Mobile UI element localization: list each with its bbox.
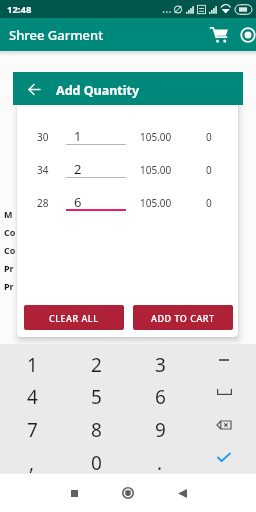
button[interactable]: dash bbox=[192, 344, 256, 376]
button[interactable]: 2 bbox=[64, 344, 128, 376]
button[interactable]: 8 bbox=[64, 408, 128, 441]
staticText: M bbox=[4, 208, 13, 220]
button[interactable]: space bbox=[192, 376, 256, 408]
staticText: 4 bbox=[27, 384, 38, 410]
staticText: 6 bbox=[74, 193, 82, 211]
button[interactable]: Cart bbox=[208, 24, 230, 46]
button[interactable]: 0 bbox=[64, 441, 128, 474]
staticText: 2 bbox=[74, 160, 82, 178]
button[interactable]: 1 bbox=[0, 344, 64, 376]
staticText: , bbox=[29, 450, 35, 476]
staticText: 12:48 bbox=[7, 3, 32, 16]
button[interactable]: CLEAR ALL bbox=[24, 305, 124, 330]
staticText: Co bbox=[4, 226, 16, 238]
button[interactable]: 4 bbox=[0, 376, 64, 408]
staticText: Shree Garment bbox=[9, 26, 104, 44]
button[interactable]: 3 bbox=[128, 344, 192, 376]
staticText: 8 bbox=[91, 417, 102, 443]
button[interactable]: , bbox=[0, 441, 64, 474]
staticText: 0 bbox=[91, 450, 102, 476]
button[interactable]: 7 bbox=[0, 408, 64, 441]
staticText: 6 bbox=[155, 384, 166, 410]
staticText: Pr bbox=[4, 280, 14, 292]
button[interactable]: Recents bbox=[64, 483, 84, 503]
staticText: 9 bbox=[155, 417, 166, 443]
staticText: 0 bbox=[206, 130, 212, 144]
staticText: Add Quantity bbox=[56, 82, 140, 99]
button[interactable]: ADD TO CART bbox=[133, 305, 233, 330]
staticText: 105.00 bbox=[140, 130, 172, 144]
button[interactable]: Record bbox=[237, 24, 256, 46]
button[interactable]: Back bbox=[172, 483, 192, 503]
button[interactable]: Home bbox=[117, 482, 139, 504]
button[interactable]: ok bbox=[192, 441, 256, 474]
button[interactable]: back bbox=[192, 408, 256, 441]
staticText: 2 bbox=[91, 352, 102, 378]
button[interactable]: 5 bbox=[64, 376, 128, 408]
button[interactable]: Back bbox=[24, 79, 44, 99]
staticText: 0 bbox=[206, 163, 212, 177]
staticText: 7 bbox=[27, 417, 38, 443]
staticText: 5 bbox=[91, 384, 102, 410]
staticText: . bbox=[157, 450, 163, 476]
staticText: CLEAR ALL bbox=[49, 312, 99, 324]
staticText: 1 bbox=[74, 127, 82, 145]
staticText: 28 bbox=[37, 196, 49, 210]
staticText: 1 bbox=[27, 352, 38, 378]
staticText: ADD TO CART bbox=[151, 312, 215, 324]
staticText: 105.00 bbox=[140, 196, 172, 210]
button[interactable]: 9 bbox=[128, 408, 192, 441]
staticText: 34 bbox=[37, 163, 49, 177]
staticText: 3 bbox=[155, 352, 166, 378]
staticText: 105.00 bbox=[140, 163, 172, 177]
button[interactable]: . bbox=[128, 441, 192, 474]
staticText: 0 bbox=[206, 196, 212, 210]
button[interactable]: 6 bbox=[128, 376, 192, 408]
staticText: Pr bbox=[4, 262, 14, 274]
staticText: Co bbox=[4, 244, 16, 256]
staticText: 30 bbox=[37, 130, 49, 144]
